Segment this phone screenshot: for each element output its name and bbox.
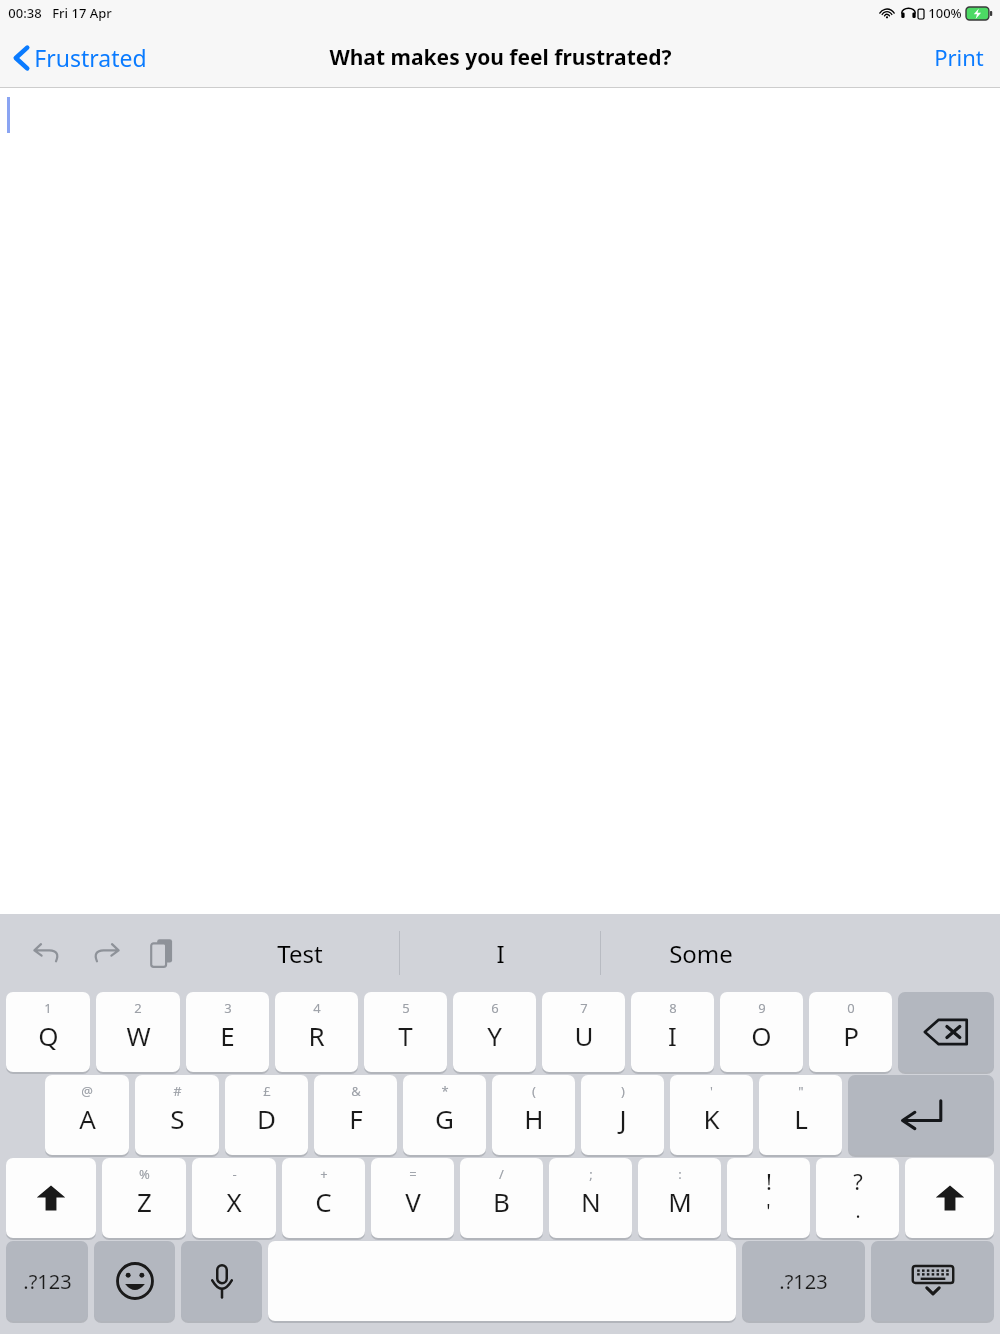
button[interactable]: Emoji [94,1241,175,1321]
staticText: ? [853,1166,863,1196]
staticText: I [496,937,505,970]
button[interactable]: 9 [720,992,803,1072]
staticText: 8 [669,999,677,1017]
staticText: - [232,1165,237,1183]
button[interactable]: # [135,1075,219,1155]
button[interactable]: Paste [143,934,181,972]
staticText: : [678,1165,682,1183]
staticText: Test [277,937,323,970]
button[interactable]: Undo [28,934,66,972]
button[interactable]: Return [848,1075,994,1155]
staticText: ; [589,1165,593,1183]
button[interactable]: 3 [186,992,269,1072]
staticText: Print [934,42,984,72]
staticText: ( [532,1082,536,1100]
staticText: 6 [491,999,499,1017]
button[interactable]: / [460,1158,543,1238]
button[interactable]: * [403,1075,486,1155]
button[interactable]: Print [934,42,984,72]
staticText: C [315,1184,332,1219]
staticText: 5 [402,999,410,1017]
staticText: % [139,1165,150,1183]
staticText: D [257,1101,276,1136]
staticText: / [499,1165,504,1183]
button[interactable]: 1 [6,992,90,1072]
button[interactable]: = [371,1158,454,1238]
staticText: X [226,1184,242,1219]
button[interactable]: 6 [453,992,536,1072]
staticText: Fri 17 Apr [52,4,112,22]
staticText: F [349,1101,363,1136]
staticText: 7 [580,999,588,1017]
staticText: L [794,1101,808,1136]
staticText: Some [669,937,733,970]
button[interactable]: Shift [905,1158,994,1238]
staticText: # [173,1082,182,1100]
staticText: A [79,1101,96,1136]
button[interactable]: 0 [809,992,892,1072]
staticText: * [441,1082,449,1100]
staticText: .?123 [779,1268,828,1295]
staticText: 4 [313,999,321,1017]
button[interactable]: : [638,1158,721,1238]
button[interactable]: Hide keyboard [871,1241,994,1321]
button[interactable]: Some [601,928,801,978]
staticText: J [619,1101,627,1136]
staticText: ' [766,1198,771,1224]
button[interactable]: ? [816,1158,899,1238]
button[interactable]: ; [549,1158,632,1238]
staticText: " [798,1082,804,1100]
staticText: 1 [44,999,52,1017]
staticText: = [409,1165,417,1183]
button[interactable]: 4 [275,992,358,1072]
staticText: O [751,1018,772,1053]
staticText: K [703,1101,720,1136]
button[interactable]: Backspace [898,992,994,1072]
button[interactable]: Dictate [181,1241,262,1321]
staticText: M [668,1184,692,1219]
staticText: N [581,1184,601,1219]
button[interactable]: Test [200,928,400,978]
button[interactable]: + [282,1158,365,1238]
staticText: 100% [928,4,962,22]
staticText: I [668,1018,677,1053]
button[interactable]: I [400,928,600,978]
button[interactable]: % [102,1158,186,1238]
button[interactable]: .?123 [6,1241,88,1321]
staticText: £ [263,1082,271,1100]
button[interactable]: Shift [6,1158,96,1238]
button[interactable]: Frustrated [14,42,147,73]
staticText: Y [487,1018,502,1053]
button[interactable]: ) [581,1075,664,1155]
staticText: B [493,1184,510,1219]
button[interactable]: ! [727,1158,810,1238]
staticText: & [351,1082,361,1100]
button[interactable]: 2 [96,992,180,1072]
button[interactable]: 7 [542,992,625,1072]
staticText: ! [766,1166,772,1196]
staticText: 00:38 [8,4,42,22]
staticText: ' [710,1082,713,1100]
staticText: U [574,1018,594,1053]
button[interactable]: .?123 [742,1241,865,1321]
staticText: H [524,1101,544,1136]
staticText: T [398,1018,413,1053]
button[interactable]: ' [670,1075,753,1155]
button[interactable]: Redo [87,934,125,972]
button[interactable]: - [192,1158,276,1238]
button[interactable]: ( [492,1075,575,1155]
button[interactable]: £ [225,1075,308,1155]
button[interactable]: " [759,1075,842,1155]
staticText: E [220,1018,235,1053]
staticText: 3 [224,999,232,1017]
button[interactable]: 5 [364,992,447,1072]
staticText: Q [38,1018,59,1053]
button[interactable]: 8 [631,992,714,1072]
staticText: @ [81,1082,93,1100]
button[interactable]: & [314,1075,397,1155]
staticText: ) [621,1082,625,1100]
button[interactable]: @ [45,1075,129,1155]
staticText: .?123 [23,1268,72,1295]
staticText: S [170,1101,185,1136]
